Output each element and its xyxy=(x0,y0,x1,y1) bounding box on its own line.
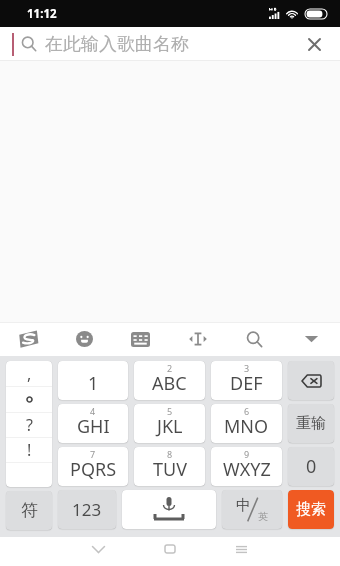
staticText: , xyxy=(27,363,32,385)
button[interactable]: 5 xyxy=(134,404,205,443)
staticText: WXYZ xyxy=(223,457,271,482)
staticText: 123 xyxy=(72,498,102,521)
button[interactable]: Sogou input xyxy=(0,322,56,356)
staticText: 8 xyxy=(167,448,173,460)
button[interactable]: Recent apps xyxy=(219,537,264,561)
staticText: 7 xyxy=(90,448,96,460)
staticText: DEF xyxy=(230,371,263,396)
button[interactable]: 7 xyxy=(58,447,128,486)
staticText: PQRS xyxy=(70,457,117,482)
staticText: 11:12 xyxy=(27,6,57,22)
staticText: 搜索 xyxy=(296,500,326,519)
staticText: 9 xyxy=(244,448,250,460)
button[interactable]: 4 xyxy=(58,404,128,443)
staticText: MNO xyxy=(224,414,269,439)
button[interactable]: Back xyxy=(76,537,121,561)
button[interactable]: Clear xyxy=(300,30,328,58)
staticText: 中 xyxy=(236,496,251,515)
staticText: ! xyxy=(27,439,32,461)
button[interactable]: 重输 xyxy=(288,404,334,443)
button[interactable]: Keyboard layout xyxy=(112,322,169,356)
button[interactable]: Space xyxy=(122,490,216,529)
staticText: 2 xyxy=(167,362,173,374)
button[interactable]: 0 xyxy=(288,447,334,486)
staticText: 1 xyxy=(88,371,99,396)
staticText: TUV xyxy=(153,457,187,482)
staticText: 重输 xyxy=(296,414,326,433)
button[interactable]: Search xyxy=(226,322,283,356)
button[interactable]: 8 xyxy=(134,447,205,486)
button[interactable]: 123 xyxy=(58,490,116,529)
staticText: GHI xyxy=(77,414,110,439)
button[interactable]: Emoji xyxy=(56,322,112,356)
button[interactable]: 9 xyxy=(211,447,282,486)
button[interactable]: 6 xyxy=(211,404,282,443)
staticText: 0 xyxy=(306,454,317,479)
staticText: 符 xyxy=(21,500,38,521)
staticText: ? xyxy=(26,414,33,436)
button[interactable]: Hide keyboard xyxy=(283,322,340,356)
button[interactable]: 搜索 xyxy=(288,490,334,529)
staticText: 在此输入歌曲名称 xyxy=(45,33,189,56)
staticText: ABC xyxy=(152,371,187,396)
button[interactable]: 1 xyxy=(58,361,128,400)
staticText: 英 xyxy=(258,510,268,523)
button[interactable]: 中 xyxy=(222,490,282,529)
staticText: JKL xyxy=(157,414,183,439)
button[interactable]: 2 xyxy=(134,361,205,400)
staticText: 4 xyxy=(90,405,96,417)
button[interactable]: Move cursor xyxy=(169,322,226,356)
staticText: 3 xyxy=(244,362,250,374)
staticText: 5 xyxy=(167,405,173,417)
button[interactable]: Backspace xyxy=(288,361,334,400)
button[interactable]: 3 xyxy=(211,361,282,400)
button[interactable]: Home xyxy=(147,537,192,561)
button[interactable]: 符 xyxy=(6,491,52,530)
staticText: 6 xyxy=(244,405,250,417)
button[interactable]: , xyxy=(6,361,52,487)
